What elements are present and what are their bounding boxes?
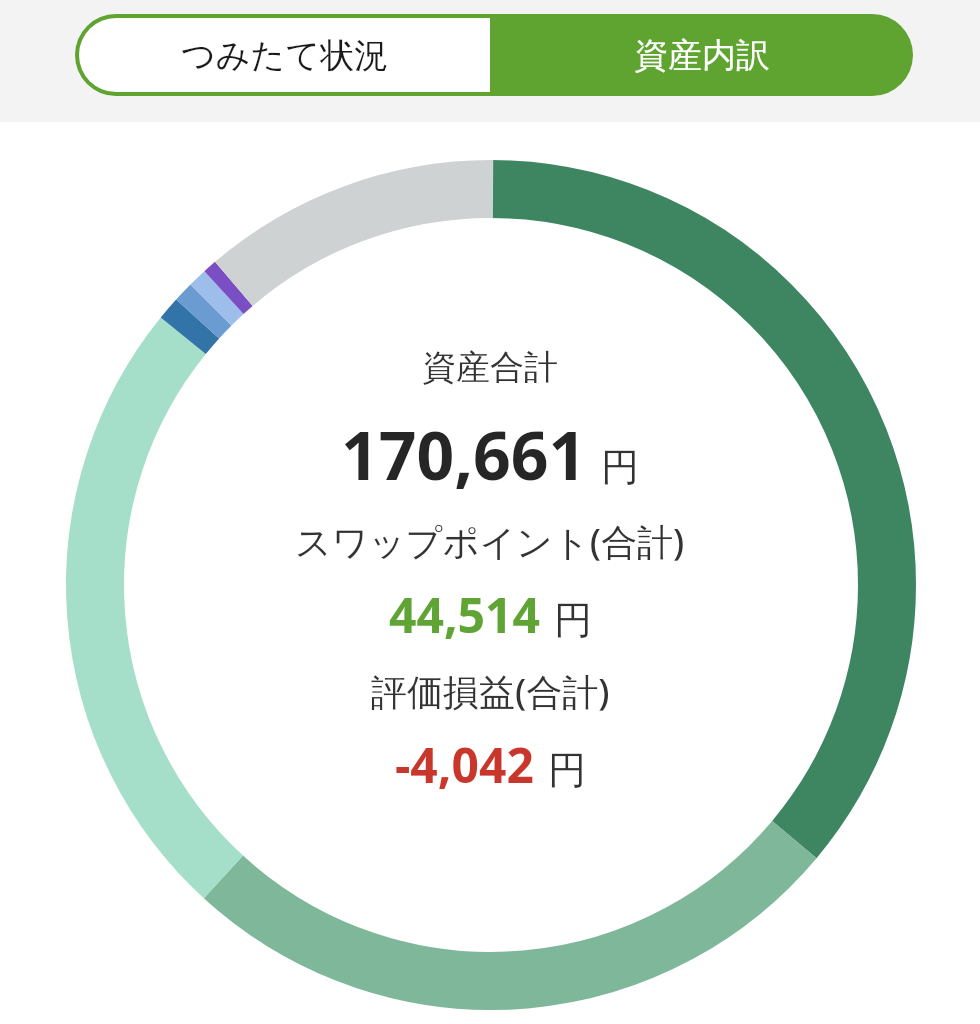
staticText: -4,042 bbox=[395, 732, 534, 797]
staticText: 円 bbox=[601, 443, 639, 491]
button[interactable]: つみたて状況 bbox=[79, 18, 490, 92]
staticText: 評価損益(合計) bbox=[371, 667, 610, 716]
staticText: 資産内訳 bbox=[634, 34, 770, 77]
staticText: 円 bbox=[548, 746, 586, 794]
staticText: スワップポイント(合計) bbox=[295, 517, 685, 566]
button[interactable]: 資産内訳 bbox=[490, 14, 913, 96]
staticText: 170,661 bbox=[341, 409, 587, 499]
staticText: つみたて状況 bbox=[181, 34, 389, 77]
staticText: 44,514 bbox=[389, 582, 540, 647]
staticText: 円 bbox=[554, 596, 592, 644]
staticText: 資産合計 bbox=[422, 346, 558, 389]
